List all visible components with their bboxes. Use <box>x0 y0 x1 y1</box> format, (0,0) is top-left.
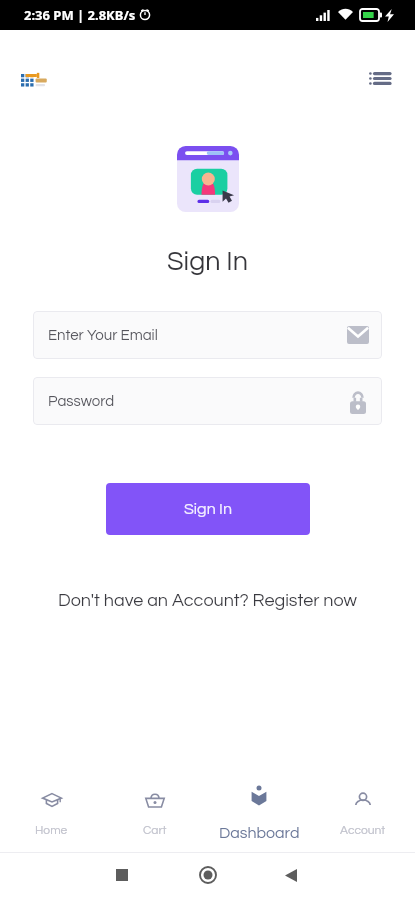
staticText: Don't have an Account? Register now <box>58 591 357 610</box>
staticText: Sign In <box>184 501 232 517</box>
button[interactable]: Sign In <box>106 483 310 535</box>
button[interactable]: Enter Your Email <box>33 311 382 359</box>
button[interactable]: Dashboard <box>207 778 311 852</box>
staticText: Account <box>340 824 386 836</box>
button[interactable]: Home <box>0 778 103 852</box>
button[interactable]: Back <box>274 858 308 892</box>
button[interactable]: Cart <box>103 778 207 852</box>
staticText: Password <box>48 394 115 409</box>
button[interactable]: Password <box>33 377 382 425</box>
button[interactable]: Account <box>311 778 415 852</box>
staticText: 2:36 PM | 2.8KB/s <box>24 6 136 24</box>
staticText: Dashboard <box>219 825 300 841</box>
staticText: Cart <box>143 824 167 836</box>
staticText: Sign In <box>167 248 248 276</box>
staticText: Home <box>35 824 68 836</box>
button[interactable]: App logo <box>21 70 49 90</box>
button[interactable]: Recent apps <box>105 858 139 892</box>
button[interactable]: Menu <box>366 67 393 89</box>
staticText: Enter Your Email <box>48 328 158 343</box>
button[interactable]: Home <box>191 858 225 892</box>
